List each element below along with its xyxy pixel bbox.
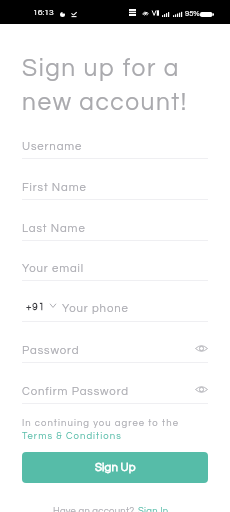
staticText: 16:13	[33, 8, 54, 17]
other: Show password	[192, 381, 210, 397]
button[interactable]: Confirm Password	[22, 386, 208, 404]
other: Show password	[192, 340, 210, 356]
staticText: Sign Up	[95, 462, 136, 474]
button[interactable]: Password	[22, 345, 208, 363]
staticText: Have an account?	[53, 506, 135, 512]
staticText: Your email	[22, 263, 84, 275]
staticText: Username	[22, 141, 83, 153]
staticText: 95%	[185, 10, 200, 18]
staticText: Your phone	[62, 303, 129, 315]
button[interactable]: First Name	[22, 182, 208, 200]
staticText: Last Name	[22, 223, 86, 235]
staticText: +91	[26, 302, 46, 312]
staticText: First Name	[22, 182, 87, 194]
button[interactable]: +91	[22, 303, 208, 321]
button[interactable]: Terms & Conditions	[22, 431, 122, 441]
button[interactable]: Sign In	[138, 506, 169, 512]
button[interactable]: Sign Up	[22, 452, 208, 483]
button[interactable]: Last Name	[22, 223, 208, 241]
button[interactable]: Your email	[22, 263, 208, 281]
staticText: Password	[22, 345, 80, 357]
staticText: In continuing you agree to the	[22, 418, 180, 428]
staticText: Sign up for a new account!	[22, 56, 188, 115]
button[interactable]: Username	[22, 141, 208, 159]
staticText: Confirm Password	[22, 386, 129, 398]
